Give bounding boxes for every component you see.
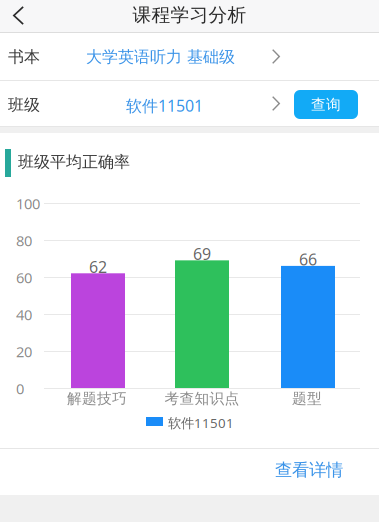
staticText: 查询 (311, 95, 341, 113)
staticText: 课程学习分析 (132, 3, 246, 26)
staticText: 班级平均正确率 (18, 152, 130, 172)
staticText: 软件11501 (168, 414, 234, 432)
staticText: 40 (16, 305, 32, 324)
staticText: 班级 (8, 95, 40, 115)
staticText: 考查知识点 (164, 389, 239, 407)
staticText: 软件11501 (126, 95, 203, 116)
button[interactable]: 查看详情 (253, 459, 343, 481)
staticText: 大学英语听力 基础级 (86, 47, 235, 67)
staticText: 书本 (8, 47, 40, 67)
staticText: 80 (16, 231, 32, 250)
button[interactable]: 班级 (0, 81, 290, 126)
staticText: 62 (89, 256, 107, 277)
staticText: 100 (16, 194, 40, 213)
staticText: 解题技巧 (67, 389, 127, 407)
staticText: 60 (16, 268, 32, 287)
button[interactable]: Back (0, 0, 40, 33)
button[interactable]: 书本 (0, 33, 379, 80)
staticText: 66 (299, 249, 317, 270)
staticText: 0 (16, 379, 24, 398)
staticText: 20 (16, 342, 32, 361)
staticText: 69 (193, 243, 211, 264)
staticText: 查看详情 (275, 459, 343, 481)
button[interactable]: 查询 (294, 90, 358, 119)
staticText: 题型 (292, 389, 322, 407)
